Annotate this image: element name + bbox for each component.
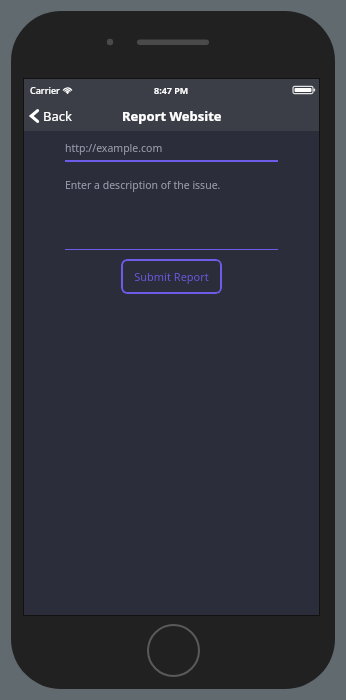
staticText: Submit Report <box>134 269 209 284</box>
staticText: Report Website <box>122 107 222 125</box>
button[interactable]: http://example.com <box>65 141 278 162</box>
button[interactable]: Enter a description of the issue. <box>65 178 278 250</box>
staticText: Back <box>43 107 72 125</box>
staticText: Carrier <box>30 84 60 96</box>
other: Home <box>147 624 200 677</box>
staticText: 8:47 PM <box>154 84 189 96</box>
staticText: http://example.com <box>65 141 163 155</box>
button[interactable]: Back <box>24 103 80 129</box>
button[interactable]: Submit Report <box>121 259 222 294</box>
staticText: Enter a description of the issue. <box>65 178 221 192</box>
